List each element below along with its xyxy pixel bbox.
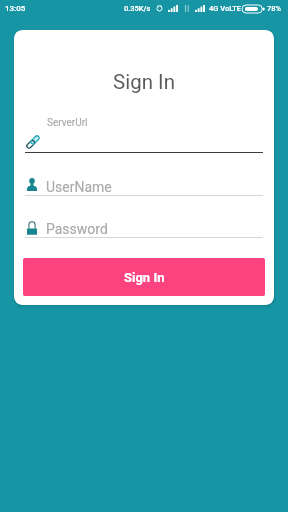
staticText: 0.35K/s: [124, 4, 151, 13]
staticText: ServerUrl: [47, 117, 88, 129]
staticText: UserName: [46, 179, 112, 195]
button[interactable]: Password field: [25, 216, 263, 242]
button[interactable]: Server URL field: [25, 132, 263, 157]
staticText: Password: [46, 221, 108, 237]
other: User name: [27, 178, 37, 191]
staticText: 4G VoLTE: [209, 4, 242, 13]
button[interactable]: User name field: [25, 174, 263, 200]
other: Server URL: [27, 136, 39, 148]
staticText: 13:05: [5, 4, 26, 13]
other: Password: [27, 220, 37, 235]
button[interactable]: Sign In: [23, 258, 265, 296]
staticText: 78%: [267, 4, 282, 13]
staticText: Sign In: [14, 70, 274, 94]
staticText: Sign In: [124, 270, 165, 285]
